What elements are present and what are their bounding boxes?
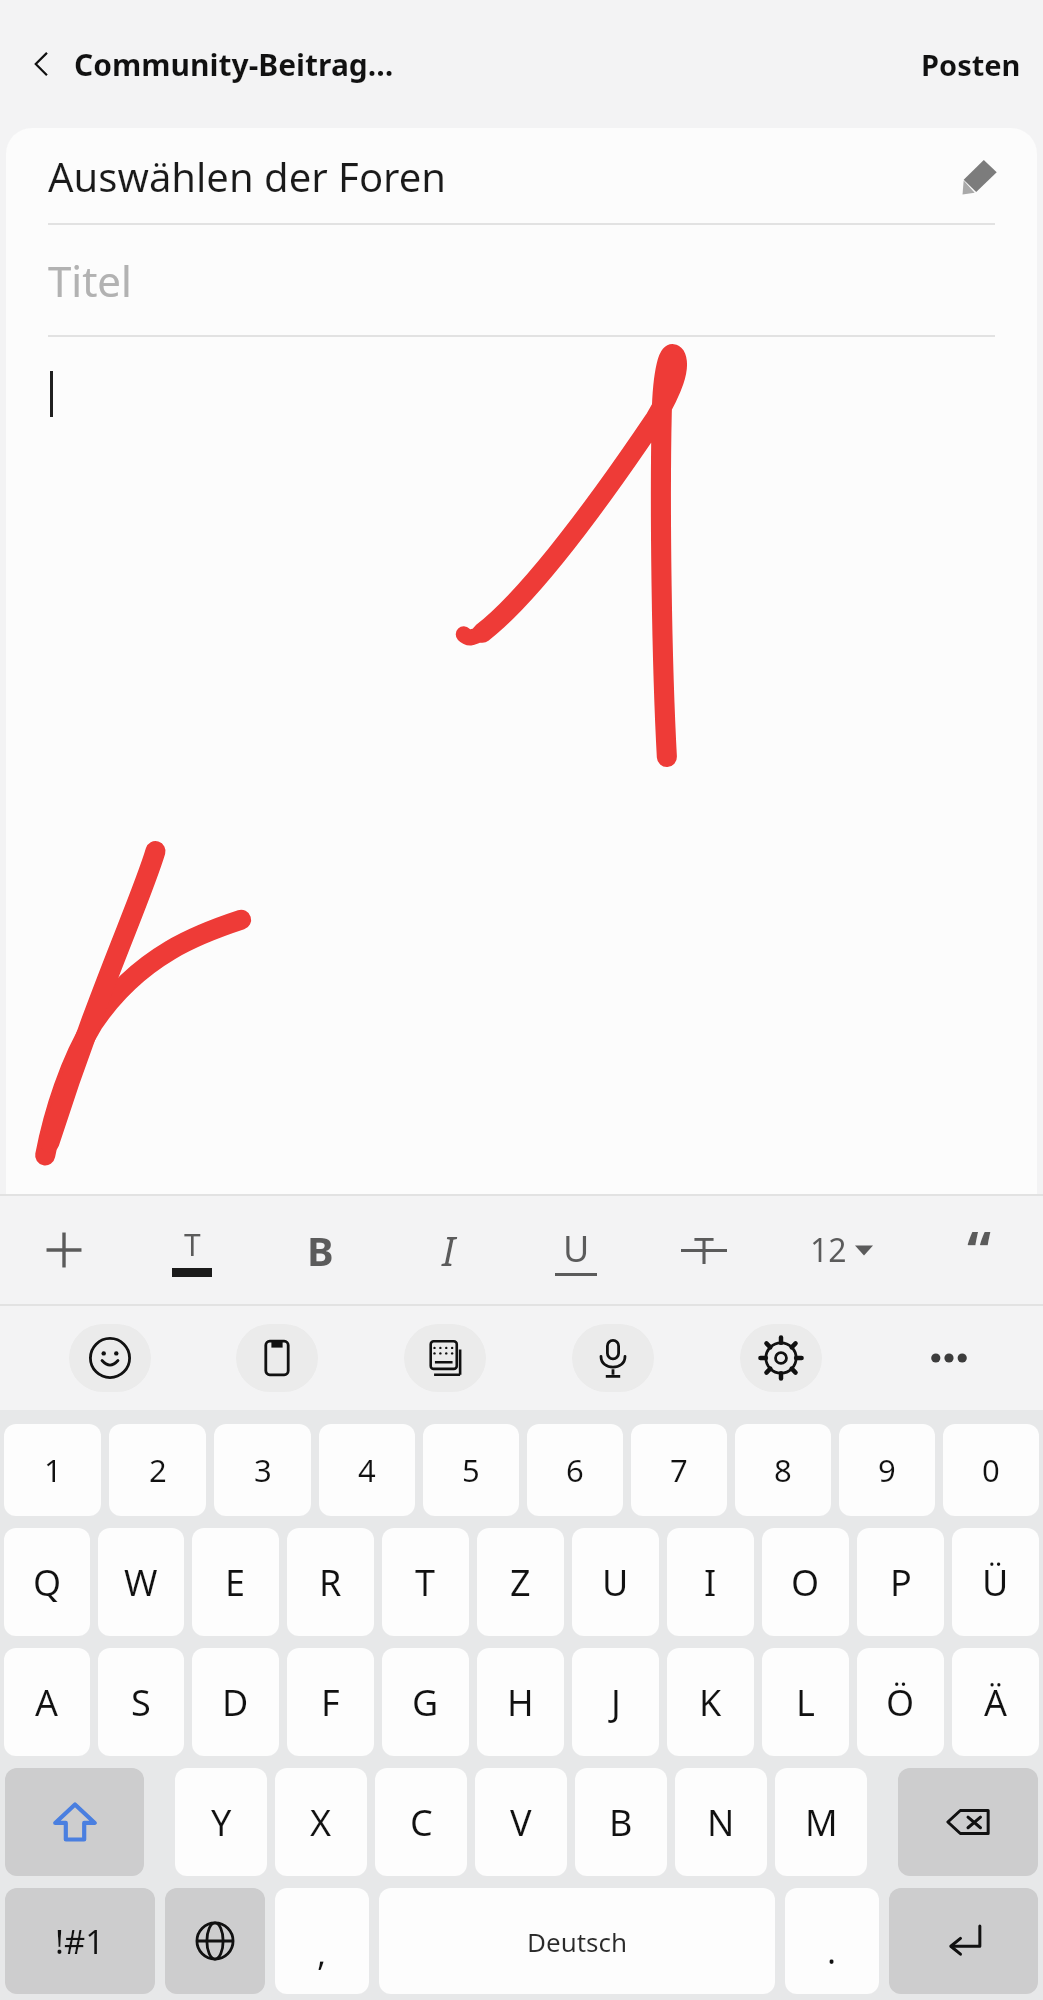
button[interactable]: E [192,1528,279,1636]
button[interactable]: 4 [319,1424,415,1516]
button[interactable]: S [98,1648,184,1756]
button[interactable]: Posten [913,39,1029,90]
staticText: . [827,1928,837,1974]
staticText: Ä [984,1678,1008,1727]
button[interactable]: P [857,1528,944,1636]
button[interactable]: 1 [4,1424,101,1516]
button[interactable]: Y [175,1768,267,1876]
button[interactable]: A [4,1648,90,1756]
staticText: 9 [878,1449,896,1491]
button[interactable]: 5 [423,1424,519,1516]
button[interactable]: Clipboard [236,1324,318,1392]
button[interactable] [6,337,1037,1194]
staticText: U [563,1224,590,1273]
button[interactable]: 9 [839,1424,935,1516]
staticText: C [410,1798,433,1847]
staticText: P [890,1558,912,1607]
button[interactable]: I [667,1528,754,1636]
staticText: X [310,1798,332,1847]
staticText: 7 [670,1449,688,1491]
staticText: U [602,1558,629,1607]
button[interactable]: Z [477,1528,564,1636]
button[interactable]: Auswählen der Foren [6,128,1037,223]
staticText: Posten [921,45,1021,84]
staticText: Community-Beitrag… [74,44,394,85]
button[interactable]: Back [14,36,70,92]
staticText: Deutsch [527,1924,628,1959]
button[interactable]: V [475,1768,567,1876]
button[interactable]: T [382,1528,469,1636]
staticText: 8 [774,1449,792,1491]
button[interactable]: 0 [943,1424,1039,1516]
button[interactable]: G [382,1648,469,1756]
staticText: K [699,1678,722,1727]
button[interactable]: R [287,1528,374,1636]
staticText: S [131,1678,151,1727]
button[interactable]: . [785,1888,879,1994]
staticText: I [442,1223,455,1277]
button[interactable]: Text color [128,1196,256,1304]
staticText: M [805,1798,838,1847]
button[interactable]: L [762,1648,849,1756]
button[interactable]: Settings [740,1324,822,1392]
button[interactable]: Change language [165,1888,265,1994]
button[interactable]: Deutsch [379,1888,775,1994]
button[interactable]: 7 [631,1424,727,1516]
button[interactable]: C [375,1768,467,1876]
button[interactable]: Emoji [69,1324,151,1392]
button[interactable]: Ö [857,1648,944,1756]
button[interactable]: Quote [915,1196,1043,1304]
staticText: T [184,1224,201,1265]
button[interactable]: Titel [6,225,1037,335]
button[interactable]: Strikethrough [640,1196,768,1304]
button[interactable]: Keyboard modes [404,1324,486,1392]
button[interactable]: Voice input [572,1324,654,1392]
staticText: 6 [566,1449,584,1491]
staticText: F [321,1678,340,1727]
button[interactable]: Italic [384,1196,512,1304]
button[interactable]: Ä [952,1648,1039,1756]
button[interactable]: Enter [889,1888,1038,1994]
button[interactable]: X [275,1768,367,1876]
staticText: I [704,1558,717,1607]
button[interactable]: 2 [109,1424,206,1516]
button[interactable]: Add [0,1196,128,1304]
button[interactable]: W [98,1528,184,1636]
staticText: Ü [982,1558,1009,1607]
button[interactable]: 12 [768,1196,915,1304]
button[interactable]: O [762,1528,849,1636]
button[interactable]: D [192,1648,279,1756]
button[interactable]: 3 [214,1424,311,1516]
staticText: 5 [462,1449,480,1491]
button[interactable]: More options [865,1306,1033,1410]
button[interactable]: U [572,1528,659,1636]
staticText: H [507,1678,534,1727]
button[interactable]: Q [4,1528,90,1636]
button[interactable]: K [667,1648,754,1756]
staticText: T [694,1226,715,1275]
staticText: A [35,1678,59,1727]
button[interactable]: Backspace [898,1768,1038,1876]
button[interactable]: Ü [952,1528,1039,1636]
button[interactable]: , [275,1888,369,1994]
button[interactable]: Underline [512,1196,640,1304]
button[interactable]: 8 [735,1424,831,1516]
button[interactable]: 6 [527,1424,623,1516]
staticText: Y [211,1798,232,1847]
button[interactable]: H [477,1648,564,1756]
staticText: , [317,1930,327,1976]
button[interactable]: J [572,1648,659,1756]
staticText: R [319,1558,342,1607]
button[interactable]: Bold [256,1196,384,1304]
button[interactable]: F [287,1648,374,1756]
button[interactable]: N [675,1768,767,1876]
button[interactable]: !#1 [5,1888,155,1994]
staticText: Q [33,1558,62,1607]
staticText: Auswählen der Foren [48,149,447,203]
button[interactable]: M [775,1768,867,1876]
staticText: W [124,1558,158,1607]
staticText: O [791,1558,820,1607]
button[interactable]: Shift [5,1768,144,1876]
staticText: 12 [810,1228,847,1272]
button[interactable]: B [575,1768,667,1876]
